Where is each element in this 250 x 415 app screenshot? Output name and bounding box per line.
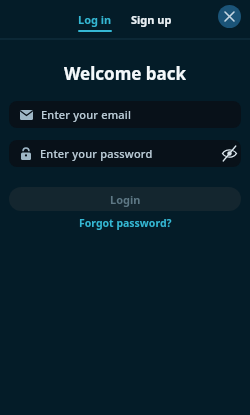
staticText: Login: [110, 192, 141, 207]
button[interactable]: Enter your email: [9, 101, 241, 128]
staticText: Forgot password?: [79, 216, 172, 230]
staticText: Log in: [78, 12, 112, 27]
button[interactable]: Login: [9, 187, 241, 211]
staticText: Enter your email: [41, 107, 132, 122]
button[interactable]: [222, 147, 237, 160]
staticText: Sign up: [131, 12, 172, 27]
button[interactable]: Log in: [78, 12, 112, 32]
staticText: Welcome back: [64, 62, 187, 85]
button[interactable]: [218, 5, 241, 28]
staticText: Enter your password: [40, 146, 153, 161]
button[interactable]: Enter your password: [9, 140, 241, 167]
button[interactable]: Forgot password?: [75, 214, 176, 232]
button[interactable]: Sign up: [131, 12, 172, 32]
